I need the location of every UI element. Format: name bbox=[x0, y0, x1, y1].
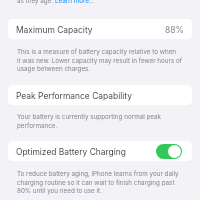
staticText: 88% bbox=[165, 25, 184, 35]
button[interactable]: Peak Performance Capability bbox=[8, 85, 192, 105]
button[interactable]: Optimized Battery Charging bbox=[8, 141, 192, 161]
staticText: To reduce battery aging, iPhone learns f… bbox=[17, 170, 200, 194]
button[interactable]: Maximum Capacity bbox=[8, 19, 192, 39]
staticText: Maximum Capacity bbox=[16, 25, 93, 35]
button[interactable]: Optimized Battery Charging toggle bbox=[156, 144, 182, 159]
staticText: as they age. Learn more... bbox=[17, 0, 95, 5]
staticText: Your battery is currently supporting nor… bbox=[17, 113, 200, 129]
staticText: Peak Performance Capability bbox=[16, 91, 132, 101]
staticText: This is a measure of battery capacity re… bbox=[17, 48, 200, 72]
staticText: Optimized Battery Charging bbox=[16, 147, 126, 157]
